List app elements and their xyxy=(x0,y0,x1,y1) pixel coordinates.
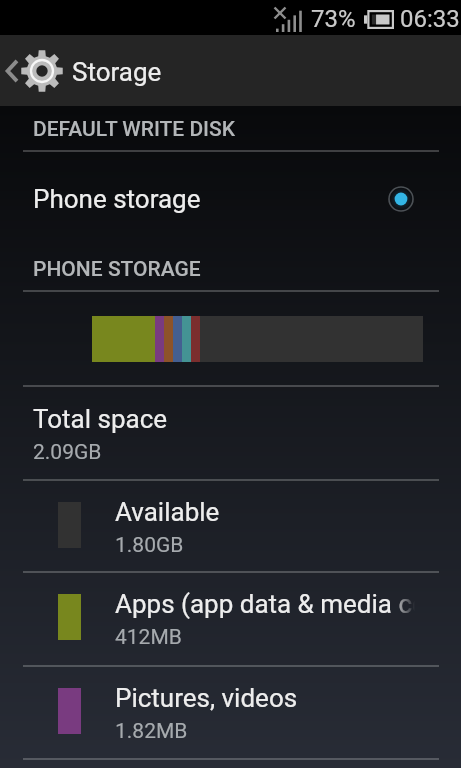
staticText: Available xyxy=(115,497,460,527)
staticText: PHONE STORAGE xyxy=(33,257,201,282)
staticText: Apps (app data & media content) xyxy=(115,589,460,619)
staticText: 73% xyxy=(311,5,356,33)
staticText: 1.82MB xyxy=(115,719,188,744)
staticText: Storage xyxy=(72,57,162,87)
staticText: 1.80GB xyxy=(115,533,184,558)
button[interactable]: Navigate up xyxy=(0,35,68,106)
staticText: 412MB xyxy=(115,625,182,650)
button[interactable]: Pictures, videos xyxy=(0,666,461,757)
staticText: Total space xyxy=(33,404,168,434)
staticText: Pictures, videos xyxy=(115,683,460,713)
button[interactable]: Phone storage xyxy=(0,151,461,241)
button[interactable]: Total space xyxy=(0,386,461,479)
staticText: 2.09GB xyxy=(33,440,102,465)
staticText: 06:33 xyxy=(400,5,460,33)
button[interactable]: Apps (app data & media content) xyxy=(0,572,461,663)
button[interactable]: Available xyxy=(0,480,461,571)
staticText: DEFAULT WRITE DISK xyxy=(33,117,235,142)
staticText: Phone storage xyxy=(33,184,201,214)
